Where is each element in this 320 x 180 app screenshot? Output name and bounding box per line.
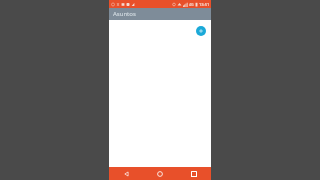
button[interactable]: Back: [109, 167, 143, 180]
button[interactable]: Home: [143, 167, 177, 180]
staticText: 13:51: [199, 2, 210, 7]
button[interactable]: Add: [196, 26, 206, 36]
button[interactable]: Recent apps: [177, 167, 211, 180]
staticText: Asuntos: [113, 10, 136, 18]
staticText: 4G: [189, 2, 194, 7]
